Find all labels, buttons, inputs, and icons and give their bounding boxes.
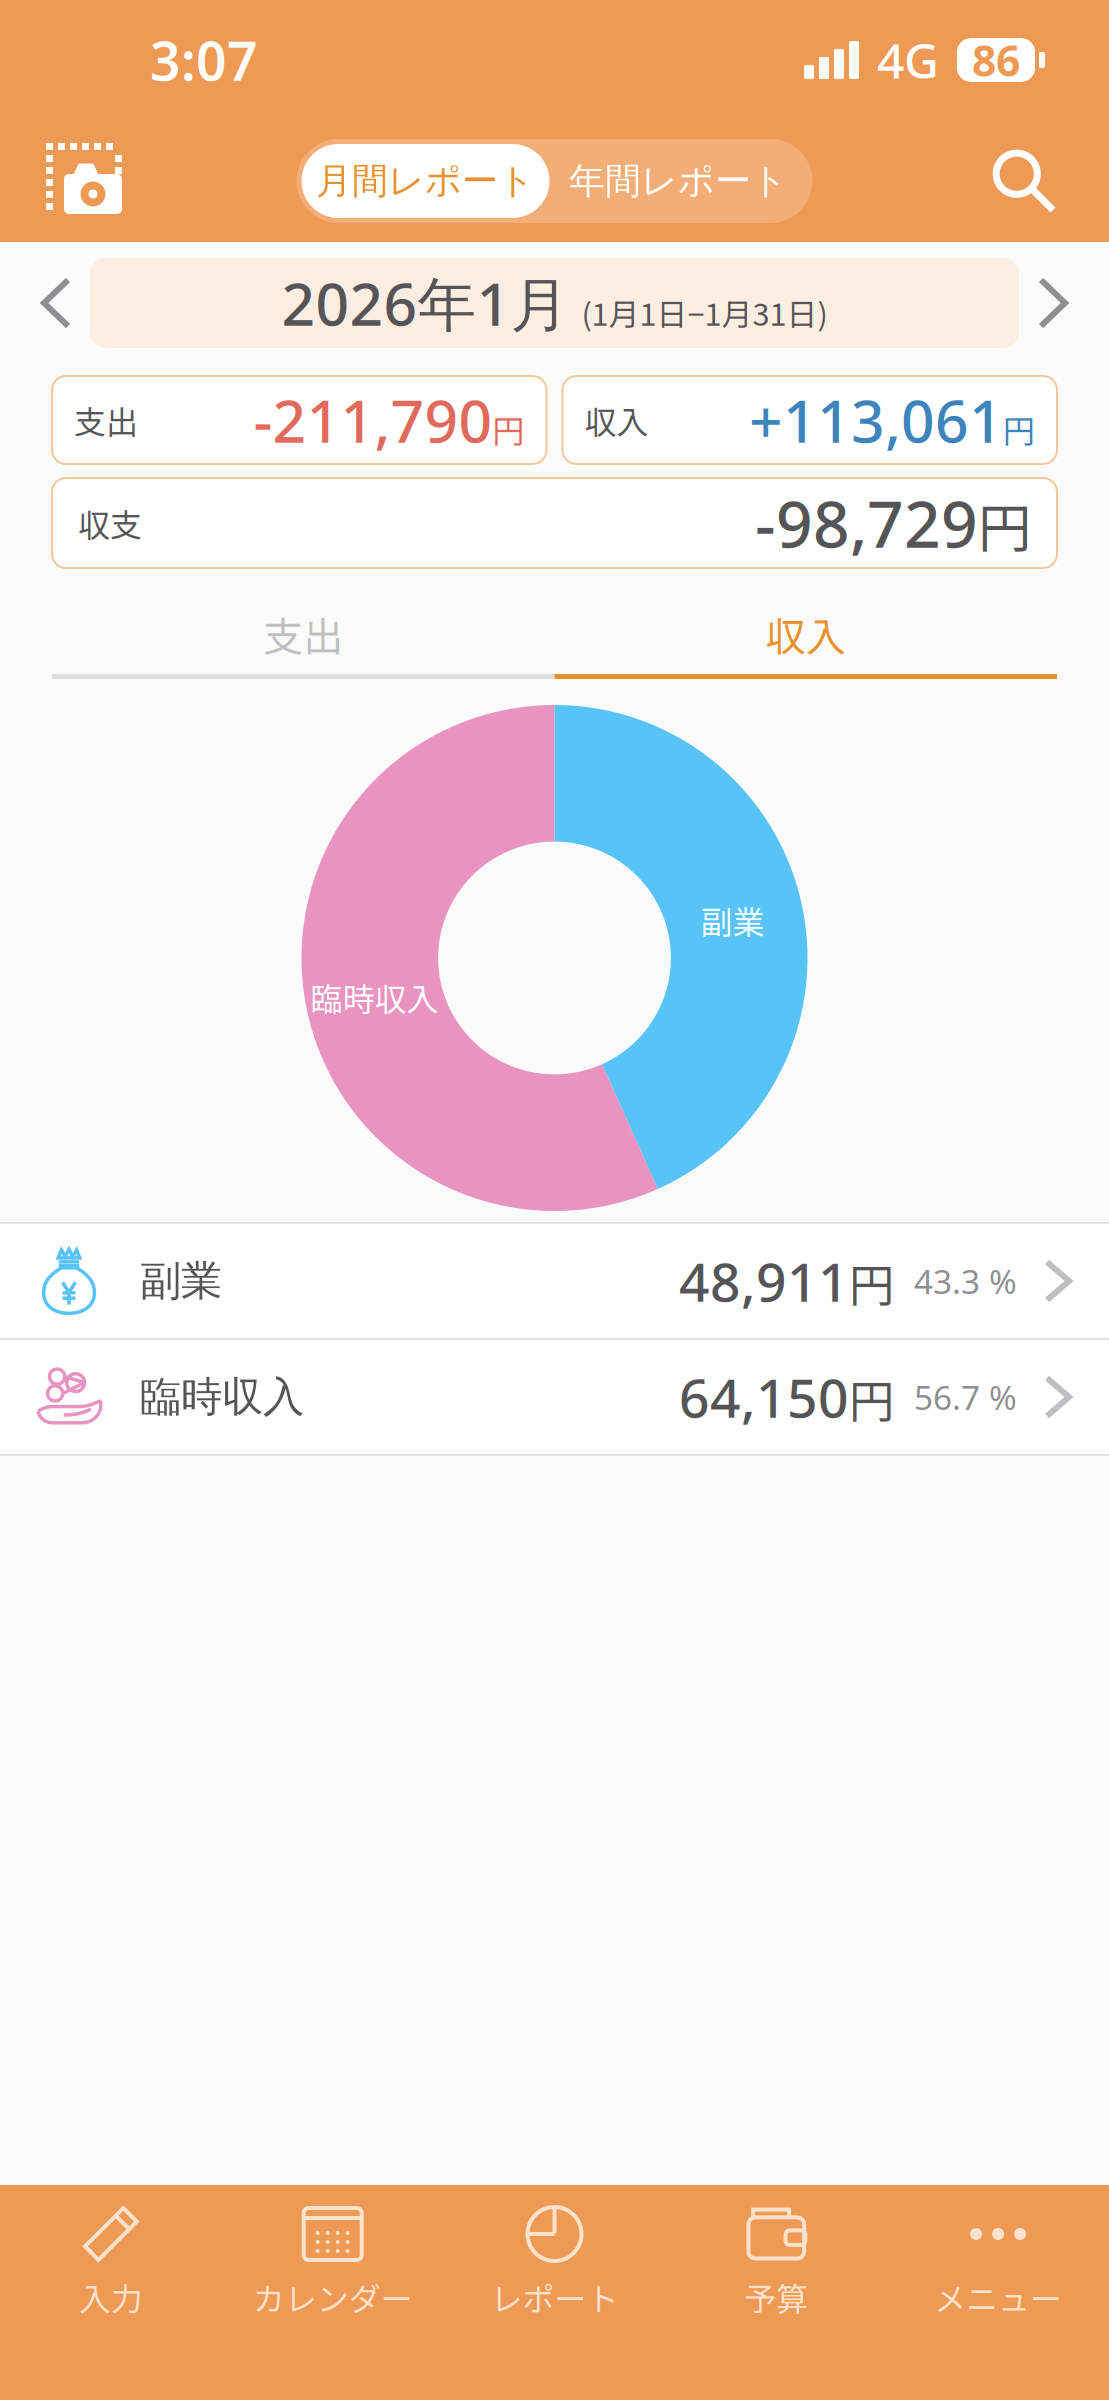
staticText: 支出 (263, 605, 343, 663)
staticText: 円 (1003, 406, 1035, 452)
staticText: 月間レポート (316, 158, 535, 204)
staticText: 円 (492, 406, 524, 452)
staticText: 64,150 (679, 1362, 849, 1432)
staticText: 48,911 (679, 1246, 849, 1316)
staticText: -98,729 (755, 480, 978, 565)
button[interactable]: Next month (1019, 280, 1087, 326)
staticText: カレンダー (253, 2274, 413, 2320)
staticText: 支出 (74, 397, 138, 443)
button[interactable]: 入力 (0, 2185, 222, 2320)
button[interactable]: 臨時収入 (0, 1340, 1109, 1454)
staticText: 円 (978, 486, 1031, 563)
staticText: 43.3 % (914, 1259, 1017, 1303)
staticText: 臨時収入 (310, 974, 438, 1020)
button[interactable]: 予算 (665, 2185, 887, 2320)
staticText: 入力 (79, 2274, 143, 2320)
button[interactable]: Previous month (22, 280, 90, 326)
button[interactable]: 支出 (52, 594, 554, 674)
staticText: 臨時収入 (140, 1371, 304, 1423)
staticText: 3:07 (150, 25, 258, 95)
staticText: 収入 (584, 397, 648, 443)
staticText: 予算 (744, 2274, 808, 2320)
staticText: 収入 (766, 605, 846, 663)
staticText: レポート (490, 2274, 618, 2320)
staticText: +113,061 (749, 381, 1003, 459)
staticText: 56.7 % (914, 1375, 1017, 1419)
button[interactable]: Screenshot (44, 141, 124, 221)
button[interactable]: 副業 (0, 1224, 1109, 1338)
button[interactable]: カレンダー (222, 2185, 444, 2320)
button[interactable]: 月間レポート (301, 144, 549, 218)
staticText: 円 (849, 1365, 894, 1431)
staticText: 4G (877, 28, 939, 92)
staticText: 円 (849, 1249, 894, 1315)
button[interactable]: 年間レポート (549, 144, 807, 218)
staticText: (1月1日−1月31日) (581, 290, 827, 335)
staticText: 副業 (700, 897, 764, 943)
staticText: -211,790 (253, 381, 492, 459)
button[interactable]: 2026年1月 (90, 258, 1019, 348)
staticText: メニュー (934, 2274, 1062, 2320)
button[interactable]: メニュー (887, 2185, 1109, 2320)
staticText: 収支 (78, 500, 142, 546)
button[interactable]: レポート (444, 2185, 665, 2320)
button[interactable]: 収入 (554, 594, 1057, 674)
staticText: 副業 (140, 1255, 222, 1307)
staticText: 年間レポート (569, 158, 788, 204)
staticText: 2026年1月 (281, 263, 569, 343)
button[interactable]: Search (985, 142, 1063, 220)
staticText: 86 (972, 32, 1020, 88)
